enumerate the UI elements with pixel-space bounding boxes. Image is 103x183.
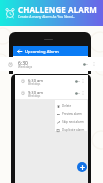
button[interactable]: Delete (57, 103, 87, 109)
staticText: 6:30 (18, 60, 28, 67)
staticText: Skip next alarm (62, 120, 84, 124)
staticText: Weekdays (18, 65, 33, 69)
button[interactable]: Back (13, 46, 88, 56)
button[interactable]: Toggle alarm (75, 80, 81, 83)
button[interactable]: More options (93, 62, 95, 66)
button[interactable]: 6:30 (0, 57, 103, 71)
staticText: Weekdays (28, 94, 41, 98)
staticText: Delete (62, 104, 72, 108)
staticText: Weekdays (28, 82, 41, 86)
button[interactable]: Toggle alarm (83, 63, 89, 66)
staticText: Preview alarm (62, 112, 82, 116)
button[interactable]: More options (82, 79, 84, 83)
button[interactable]: 6:30 am (15, 75, 88, 87)
staticText: 6:30 am (28, 78, 43, 83)
staticText: Upcoming Alarm (25, 49, 59, 55)
button[interactable]: Skip next alarm (57, 119, 87, 125)
staticText: Create A many Alarm As You Need... (18, 14, 76, 19)
button[interactable]: More options (82, 91, 84, 95)
staticText: 9:30 am (28, 90, 43, 95)
button[interactable]: Back (17, 49, 22, 54)
button[interactable]: Add alarm (77, 162, 87, 172)
button[interactable]: Toggle alarm (75, 92, 81, 95)
staticText: CHALLENGE ALARM (18, 4, 97, 15)
button[interactable]: 9:30 am (15, 87, 88, 99)
button[interactable]: Duplicate alarm (57, 127, 87, 133)
button[interactable]: Preview alarm (57, 111, 87, 117)
staticText: Duplicate alarm (62, 128, 85, 132)
